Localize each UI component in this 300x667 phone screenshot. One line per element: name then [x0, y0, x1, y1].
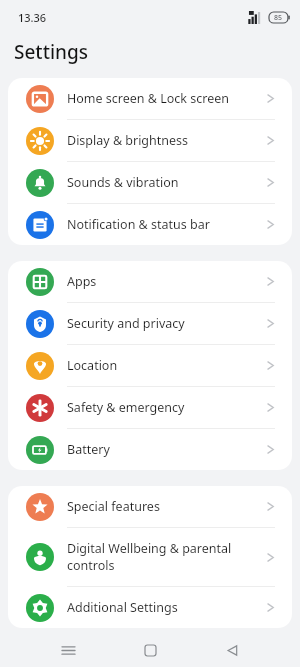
- button[interactable]: Apps: [8, 261, 292, 302]
- button[interactable]: Notification & status bar: [8, 204, 292, 245]
- staticText: Settings: [14, 39, 88, 65]
- staticText: Special features: [67, 498, 260, 515]
- staticText: Digital Wellbeing & parental controls: [67, 540, 260, 574]
- button[interactable]: Sounds & vibration: [8, 162, 292, 203]
- staticText: Display & brightness: [67, 132, 260, 149]
- staticText: Safety & emergency: [67, 399, 260, 416]
- staticText: Location: [67, 357, 260, 374]
- staticText: Notification & status bar: [67, 216, 260, 233]
- staticText: Home screen & Lock screen: [67, 90, 260, 107]
- staticText: 85: [274, 13, 283, 23]
- staticText: Apps: [67, 273, 260, 290]
- button[interactable]: Battery: [8, 429, 292, 470]
- button[interactable]: Home screen & Lock screen: [8, 78, 292, 119]
- button[interactable]: Special features: [8, 486, 292, 527]
- staticText: 13.36: [18, 10, 47, 25]
- button[interactable]: Back: [216, 634, 248, 666]
- button[interactable]: Home: [134, 634, 166, 666]
- staticText: Battery: [67, 441, 260, 458]
- button[interactable]: Location: [8, 345, 292, 386]
- staticText: Additional Settings: [67, 599, 260, 616]
- staticText: Sounds & vibration: [67, 174, 260, 191]
- button[interactable]: Display & brightness: [8, 120, 292, 161]
- button[interactable]: Additional Settings: [8, 587, 292, 628]
- staticText: Security and privacy: [67, 315, 260, 332]
- button[interactable]: Digital Wellbeing & parental controls: [8, 528, 292, 586]
- button[interactable]: Recent apps: [52, 634, 84, 666]
- button[interactable]: Security and privacy: [8, 303, 292, 344]
- button[interactable]: Safety & emergency: [8, 387, 292, 428]
